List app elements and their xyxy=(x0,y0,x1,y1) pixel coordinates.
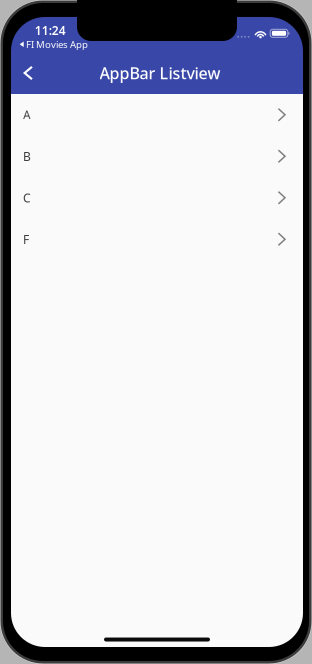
staticText: 11:24 xyxy=(35,22,66,38)
staticText: A xyxy=(23,107,31,123)
button[interactable]: C xyxy=(11,177,303,218)
staticText: C xyxy=(23,190,31,206)
staticText: B xyxy=(23,148,31,164)
staticText: FI Movies App xyxy=(26,38,88,51)
button[interactable]: A xyxy=(11,94,303,135)
button[interactable]: B xyxy=(11,135,303,177)
staticText: AppBar Listview xyxy=(99,62,220,84)
staticText: F xyxy=(23,231,29,247)
button[interactable]: Back xyxy=(11,52,45,94)
button[interactable]: F xyxy=(11,218,303,260)
